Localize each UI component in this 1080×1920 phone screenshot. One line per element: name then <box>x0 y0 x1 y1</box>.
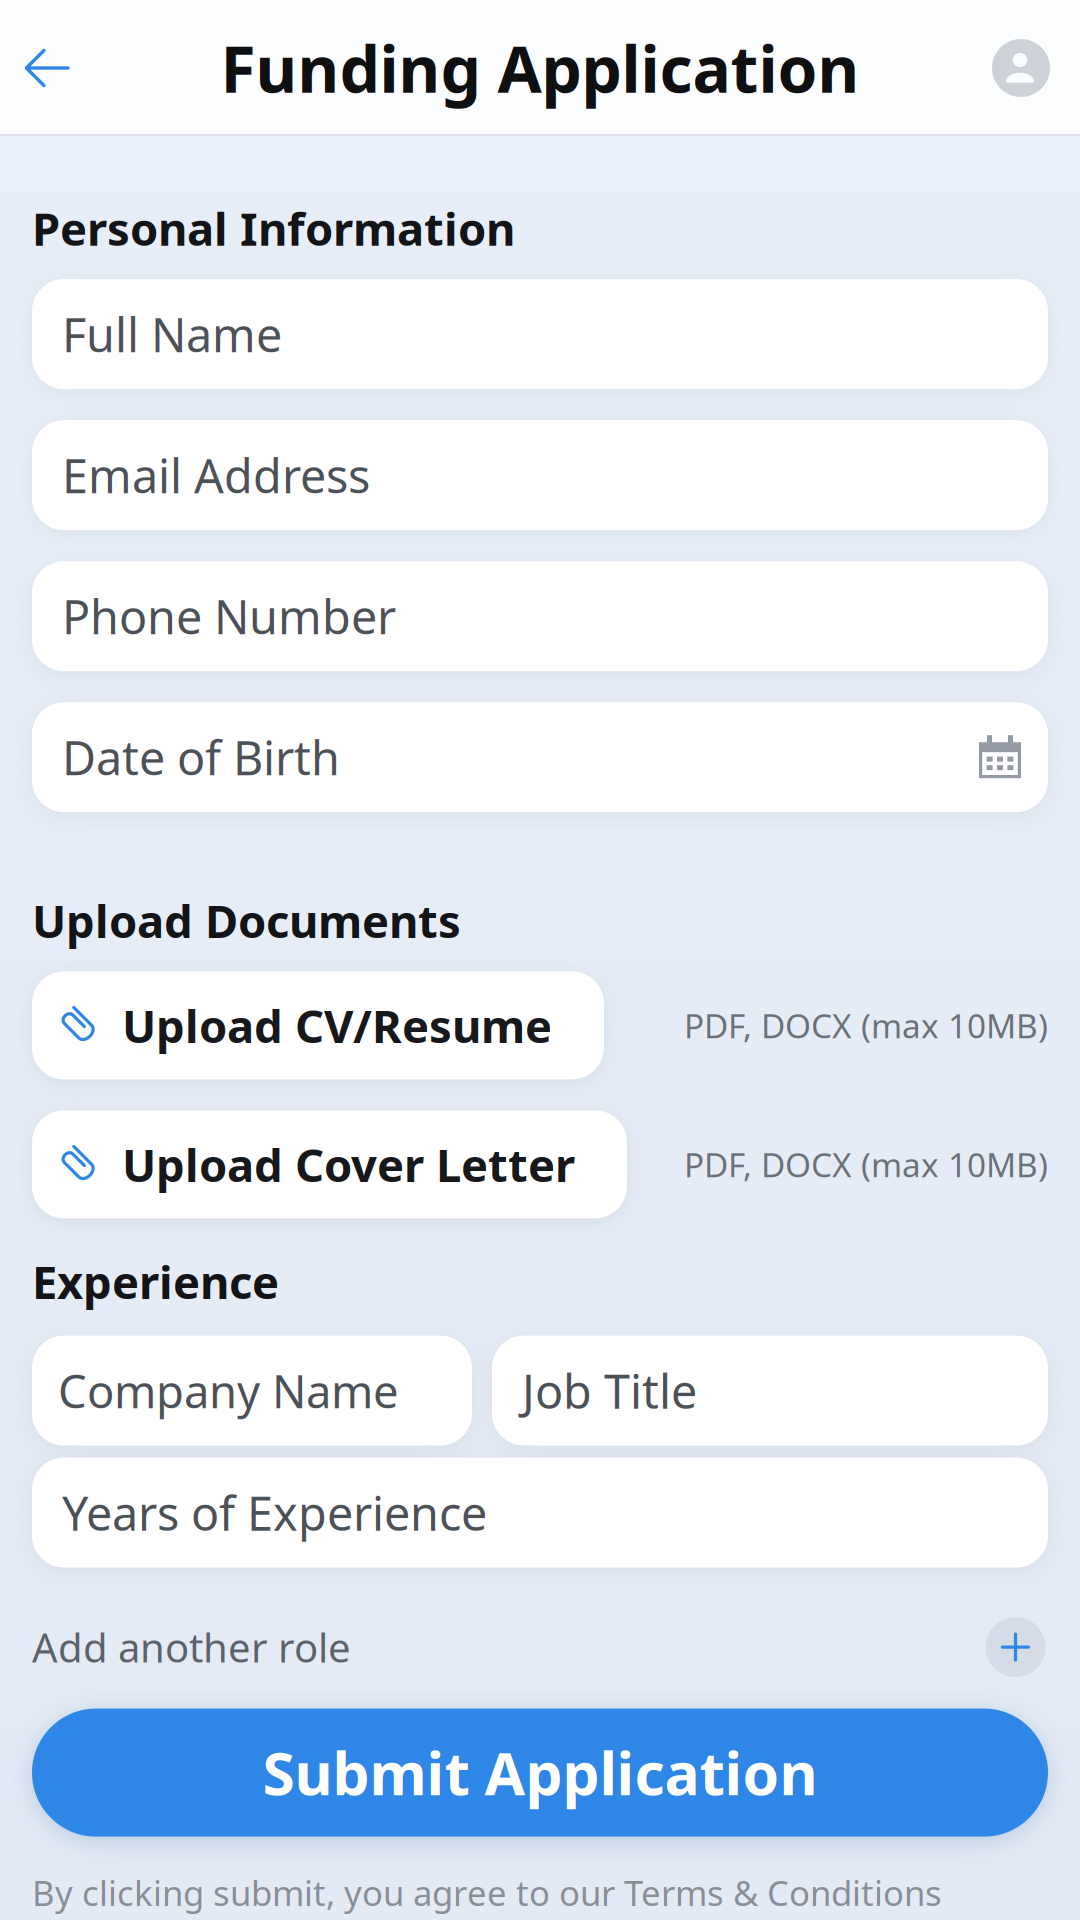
staticText: Email Address <box>62 444 370 506</box>
button[interactable]: Date of Birth <box>32 702 1048 812</box>
staticText: PDF, DOCX (max 10MB) <box>684 1142 1048 1187</box>
staticText: Upload CV/Resume <box>122 995 552 1055</box>
button[interactable]: Company Name <box>32 1336 472 1446</box>
staticText: Phone Number <box>62 585 396 647</box>
button[interactable]: Upload CV/Resume <box>32 971 604 1079</box>
staticText: Funding Application <box>220 25 859 110</box>
staticText: Experience <box>32 1251 279 1312</box>
button[interactable]: Email Address <box>32 420 1048 530</box>
button[interactable]: Years of Experience <box>32 1458 1048 1568</box>
button[interactable]: Back <box>0 8 86 128</box>
button[interactable]: Job Title <box>492 1336 1048 1446</box>
button[interactable]: Upload Cover Letter <box>32 1110 627 1218</box>
staticText: Submit Application <box>262 1734 817 1811</box>
button[interactable]: Profile <box>978 8 1080 128</box>
staticText: Job Title <box>522 1360 697 1422</box>
button[interactable]: Add another role <box>32 1615 1048 1680</box>
button[interactable]: Phone Number <box>32 561 1048 671</box>
staticText: Years of Experience <box>62 1482 487 1544</box>
button[interactable]: Submit Application <box>32 1709 1048 1837</box>
staticText: Add another role <box>32 1620 351 1674</box>
staticText: Upload Documents <box>32 890 461 950</box>
staticText: By clicking submit, you agree to our Ter… <box>32 1870 942 1916</box>
staticText: Upload Cover Letter <box>122 1134 575 1194</box>
staticText: Personal Information <box>32 198 515 258</box>
staticText: Date of Birth <box>62 726 340 788</box>
staticText: Full Name <box>62 303 282 365</box>
button[interactable]: Full Name <box>32 279 1048 389</box>
staticText: PDF, DOCX (max 10MB) <box>684 1003 1048 1048</box>
staticText: Company Name <box>58 1360 399 1421</box>
